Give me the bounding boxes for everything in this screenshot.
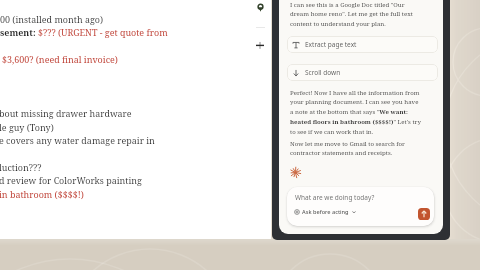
staticText: Scroll down (305, 68, 341, 77)
staticText: sement: $??? (URGENT - get quote from (0, 26, 168, 38)
staticText: Now let me move to Gmail to search for c… (290, 139, 421, 157)
staticText: in bathroom ($$$$!) (0, 188, 84, 200)
staticText: Ask before acting (302, 208, 349, 216)
staticText: e covers any water damage repair in (0, 134, 155, 146)
staticText: Perfect! Now I have all the information … (290, 88, 421, 136)
staticText: I can see this is a Google Doc titled "O… (290, 0, 421, 28)
button[interactable]: Send (418, 208, 430, 220)
staticText: d review for ColorWorks painting (0, 174, 142, 186)
staticText: bout missing drawer hardware (0, 107, 132, 119)
staticText: Extract page text (305, 40, 357, 49)
staticText: What are we doing today? (295, 193, 375, 202)
staticText: $3,600? (need final invoice) (2, 53, 118, 65)
staticText: 00 (installed month ago) (0, 13, 103, 25)
staticText: le guy (Tony) (0, 121, 54, 133)
button[interactable]: Scroll down (287, 64, 438, 81)
button[interactable]: Extract page text (287, 36, 438, 53)
button[interactable]: Ask before acting (294, 208, 356, 216)
staticText: luction??? (0, 161, 42, 173)
